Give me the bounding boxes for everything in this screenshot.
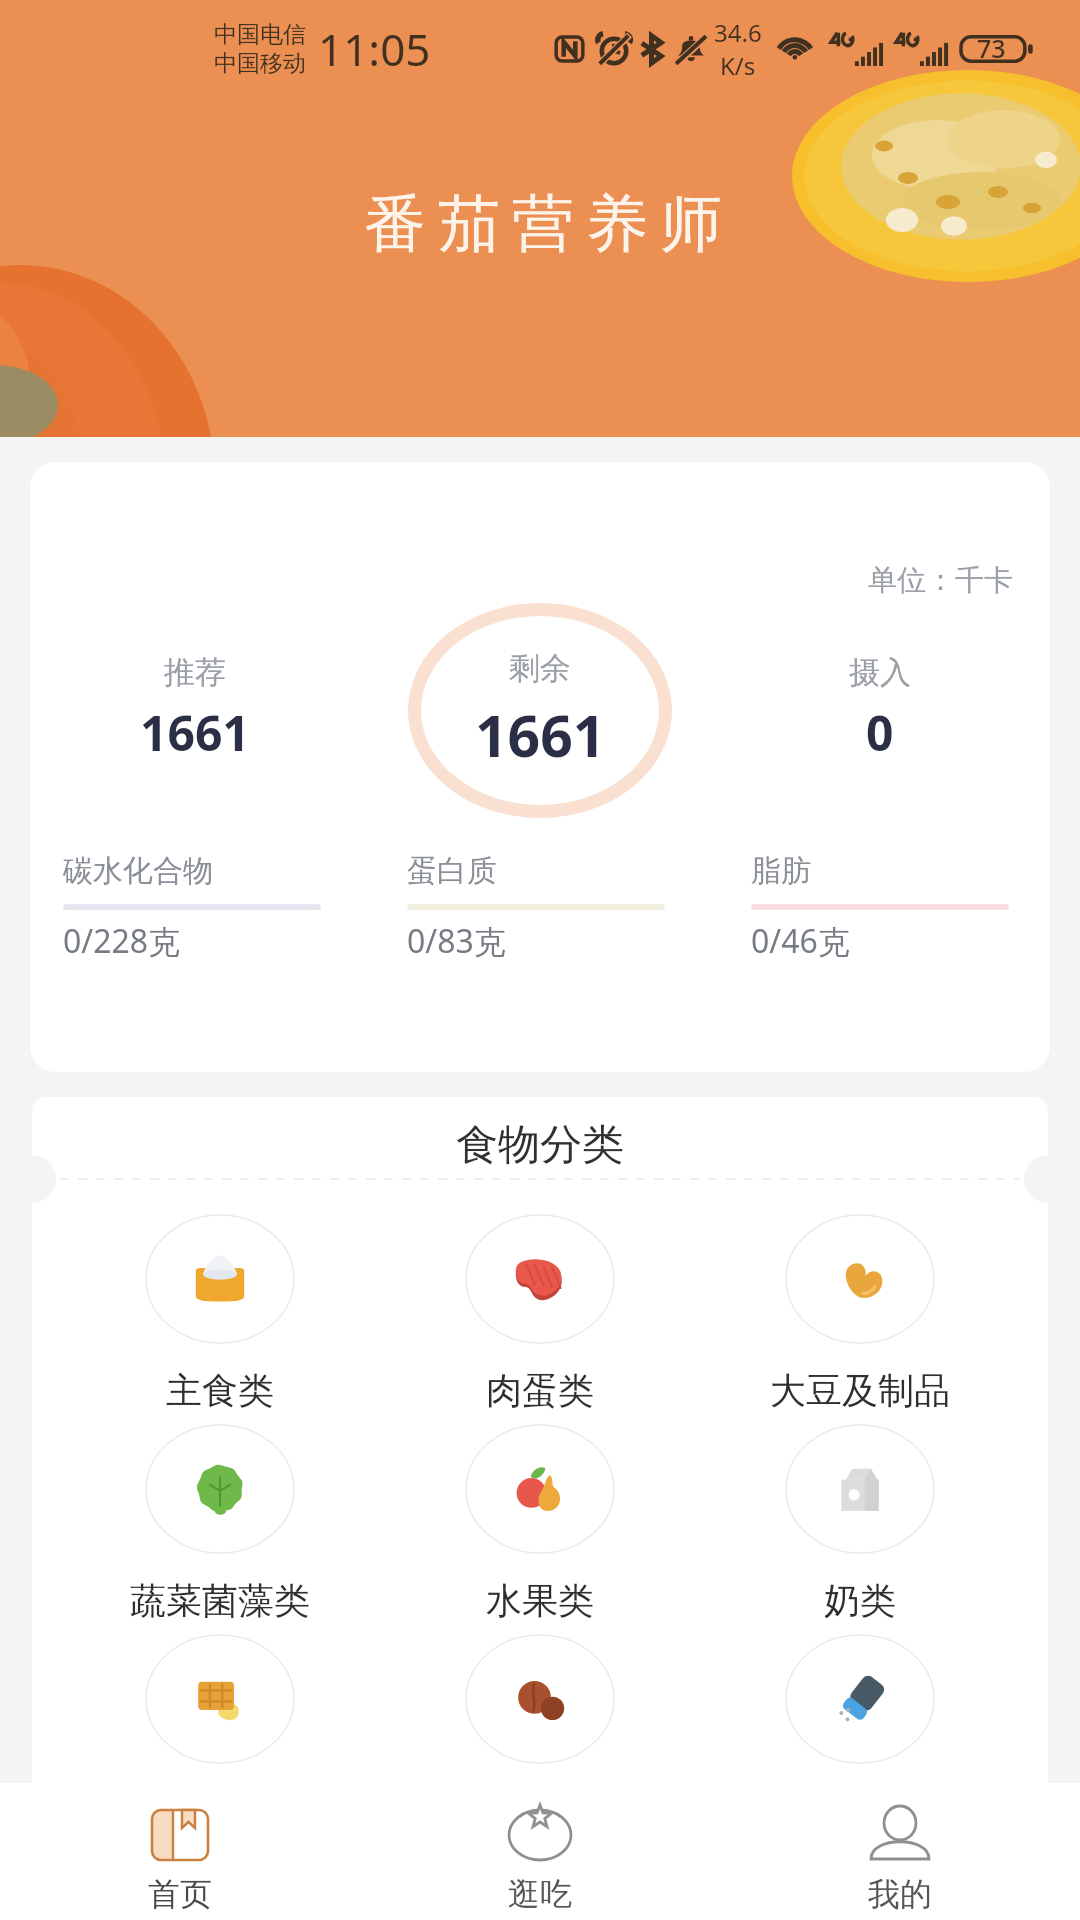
staticText: 0/228克	[63, 919, 181, 963]
staticText: 11:05	[318, 19, 431, 79]
staticText: 水果类	[486, 1578, 594, 1623]
button[interactable]: 主食类	[90, 1214, 350, 1413]
button[interactable]: 我的	[720, 1783, 1080, 1920]
staticText: 蔬菜菌藻类	[130, 1578, 310, 1623]
staticText: 中国移动	[214, 49, 306, 78]
staticText: 0	[866, 700, 894, 765]
staticText: 我的	[868, 1874, 932, 1914]
button[interactable]: 调味品	[730, 1634, 990, 1797]
staticText: 大豆及制品	[770, 1368, 950, 1413]
button[interactable]: 油脂类	[90, 1634, 350, 1797]
staticText: 首页	[148, 1874, 212, 1914]
staticText: 剩余	[509, 649, 571, 688]
button[interactable]: 逛吃	[360, 1783, 720, 1920]
button[interactable]: 首页	[0, 1783, 360, 1920]
staticText: 碳水化合物	[63, 852, 213, 890]
staticText: 奶类	[824, 1578, 896, 1623]
button[interactable]: 奶类	[730, 1424, 990, 1623]
staticText: 逛吃	[508, 1874, 572, 1914]
button[interactable]: 蔬菜菌藻类	[90, 1424, 350, 1623]
staticText: 0/46克	[751, 919, 850, 963]
staticText: 中国电信	[214, 20, 306, 49]
staticText: 73	[977, 31, 1006, 65]
button[interactable]: 摄入	[780, 653, 980, 765]
staticText: 34.6	[714, 16, 762, 49]
staticText: 0/83克	[407, 919, 506, 963]
staticText: 摄入	[849, 653, 911, 692]
staticText: 食物分类	[456, 1119, 624, 1172]
staticText: 肉蛋类	[486, 1368, 594, 1413]
staticText: 单位：千卡	[868, 562, 1013, 599]
staticText: 番茄营养师	[358, 185, 728, 263]
staticText: 主食类	[166, 1368, 274, 1413]
button[interactable]: 推荐	[95, 653, 295, 765]
staticText: 蛋白质	[407, 852, 497, 890]
staticText: 脂肪	[751, 852, 811, 890]
staticText: K/s	[720, 49, 756, 82]
button[interactable]: 剩余	[440, 649, 640, 774]
staticText: 1661	[140, 700, 250, 765]
button[interactable]: 坚果类	[410, 1634, 670, 1797]
button[interactable]: 肉蛋类	[410, 1214, 670, 1413]
staticText: 1661	[475, 696, 606, 774]
button[interactable]: 大豆及制品	[730, 1214, 990, 1413]
button[interactable]: 水果类	[410, 1424, 670, 1623]
staticText: 推荐	[164, 653, 226, 692]
